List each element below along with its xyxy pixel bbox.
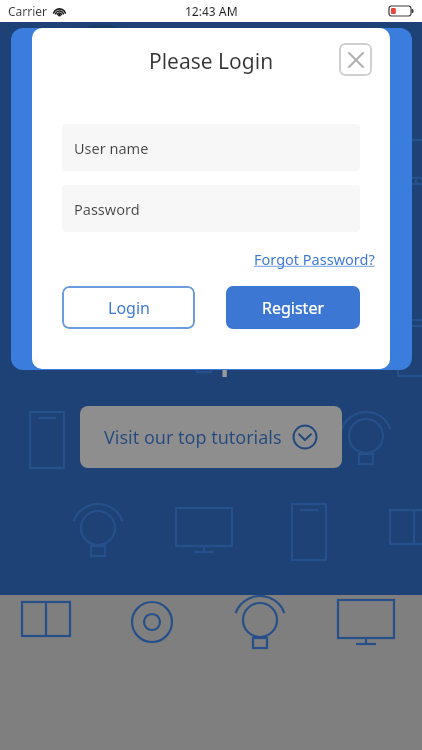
staticText: Visit our top tutorials <box>104 425 282 450</box>
staticText: 12:43 AM <box>185 3 238 19</box>
staticText: Please Login <box>149 47 274 76</box>
staticText: Register <box>262 297 325 319</box>
staticText: and experts <box>128 340 294 378</box>
button[interactable]: User name <box>62 124 360 171</box>
staticText: User name <box>74 138 149 158</box>
button[interactable]: Register <box>226 286 360 329</box>
button[interactable]: Login <box>62 286 195 329</box>
staticText: Password <box>74 199 140 219</box>
button[interactable]: Forgot Password? <box>254 249 375 269</box>
staticText: Carrier <box>8 3 48 19</box>
staticText: Login <box>108 297 150 319</box>
button[interactable]: Password <box>62 185 360 232</box>
button[interactable]: Close <box>339 43 372 76</box>
button[interactable]: Visit our top tutorials <box>80 406 342 468</box>
